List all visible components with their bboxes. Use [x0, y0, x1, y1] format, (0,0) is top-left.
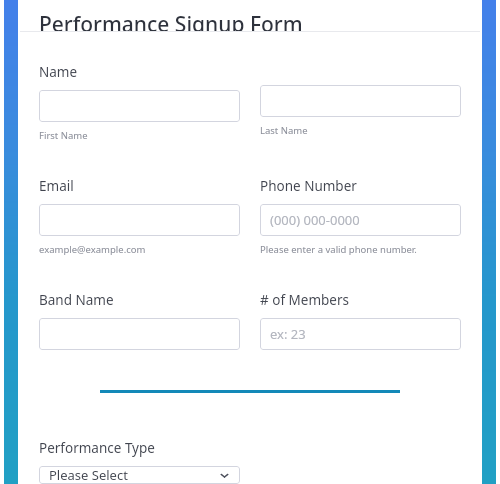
staticText: # of Members	[260, 291, 349, 309]
button[interactable]: Email	[39, 204, 240, 236]
button[interactable]: # of Members	[260, 318, 461, 350]
button[interactable]: Band Name	[39, 318, 240, 350]
staticText: Name	[39, 63, 78, 81]
button[interactable]: Name	[39, 90, 240, 122]
staticText: ex: 23	[270, 325, 306, 343]
staticText: Performance Signup Form	[39, 10, 303, 32]
staticText: Last Name	[260, 124, 308, 137]
staticText: Email	[39, 177, 74, 195]
staticText: Band Name	[39, 291, 114, 309]
staticText: example@example.com	[39, 243, 146, 256]
staticText: First Name	[39, 129, 88, 142]
button[interactable]: Last Name	[260, 85, 461, 117]
staticText: Phone Number	[260, 177, 357, 195]
staticText: Please enter a valid phone number.	[260, 243, 417, 256]
staticText: (000) 000-0000	[270, 211, 360, 229]
button[interactable]: Performance Type	[39, 466, 240, 484]
staticText: Please Select	[49, 466, 128, 484]
staticText: Performance Type	[39, 439, 155, 457]
button[interactable]: Phone Number	[260, 204, 461, 236]
